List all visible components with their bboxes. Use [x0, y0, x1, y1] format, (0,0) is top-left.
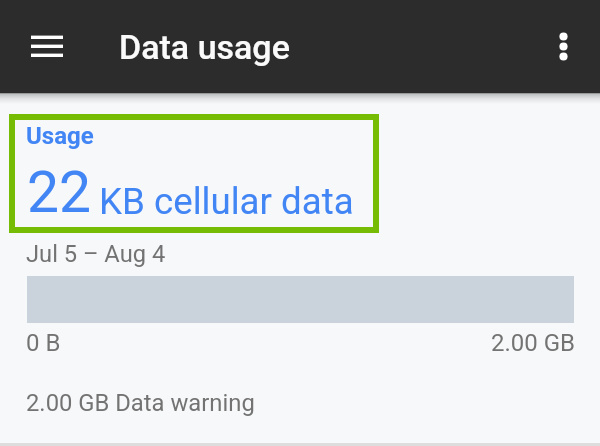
staticText: Data usage: [119, 27, 290, 67]
button[interactable]: More options: [539, 22, 587, 70]
button[interactable]: Open navigation drawer: [22, 22, 70, 70]
staticText: 2.00 GB: [28, 329, 575, 357]
staticText: 22: [27, 159, 92, 226]
button[interactable]: Usage: [0, 108, 600, 263]
staticText: KB cellular data: [99, 180, 354, 223]
staticText: Jul 5 – Aug 4: [26, 240, 166, 268]
staticText: 2.00 GB Data warning: [26, 389, 255, 417]
staticText: Usage: [26, 122, 94, 150]
staticText: 0 B: [26, 329, 61, 357]
button[interactable]: 2.00 GB Data warning: [0, 366, 600, 443]
